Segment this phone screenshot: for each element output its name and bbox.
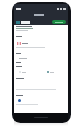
button[interactable]	[16, 41, 66, 45]
button[interactable]	[19, 71, 26, 73]
button[interactable]	[16, 57, 66, 59]
button[interactable]: Vector home	[16, 21, 30, 24]
button[interactable]	[16, 99, 66, 102]
button[interactable]	[47, 71, 54, 73]
button[interactable]	[52, 20, 66, 24]
